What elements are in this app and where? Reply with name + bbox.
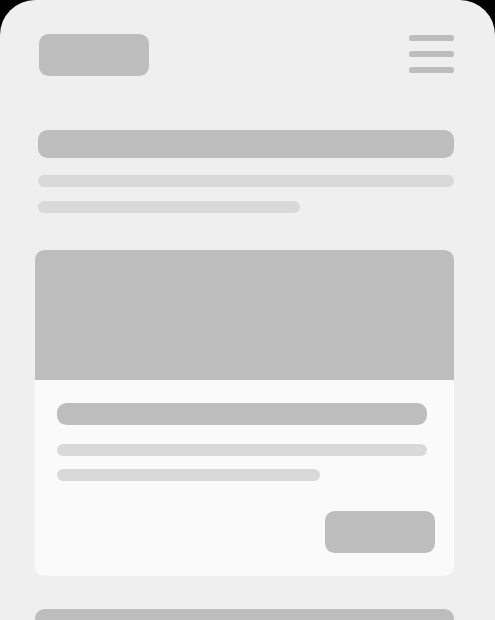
- button[interactable]: Read more: [35, 609, 454, 620]
- button[interactable]: Menu: [401, 26, 462, 81]
- button[interactable]: Home: [39, 34, 149, 76]
- button[interactable]: Read more: [325, 511, 435, 553]
- button[interactable]: Read more: [35, 250, 454, 576]
